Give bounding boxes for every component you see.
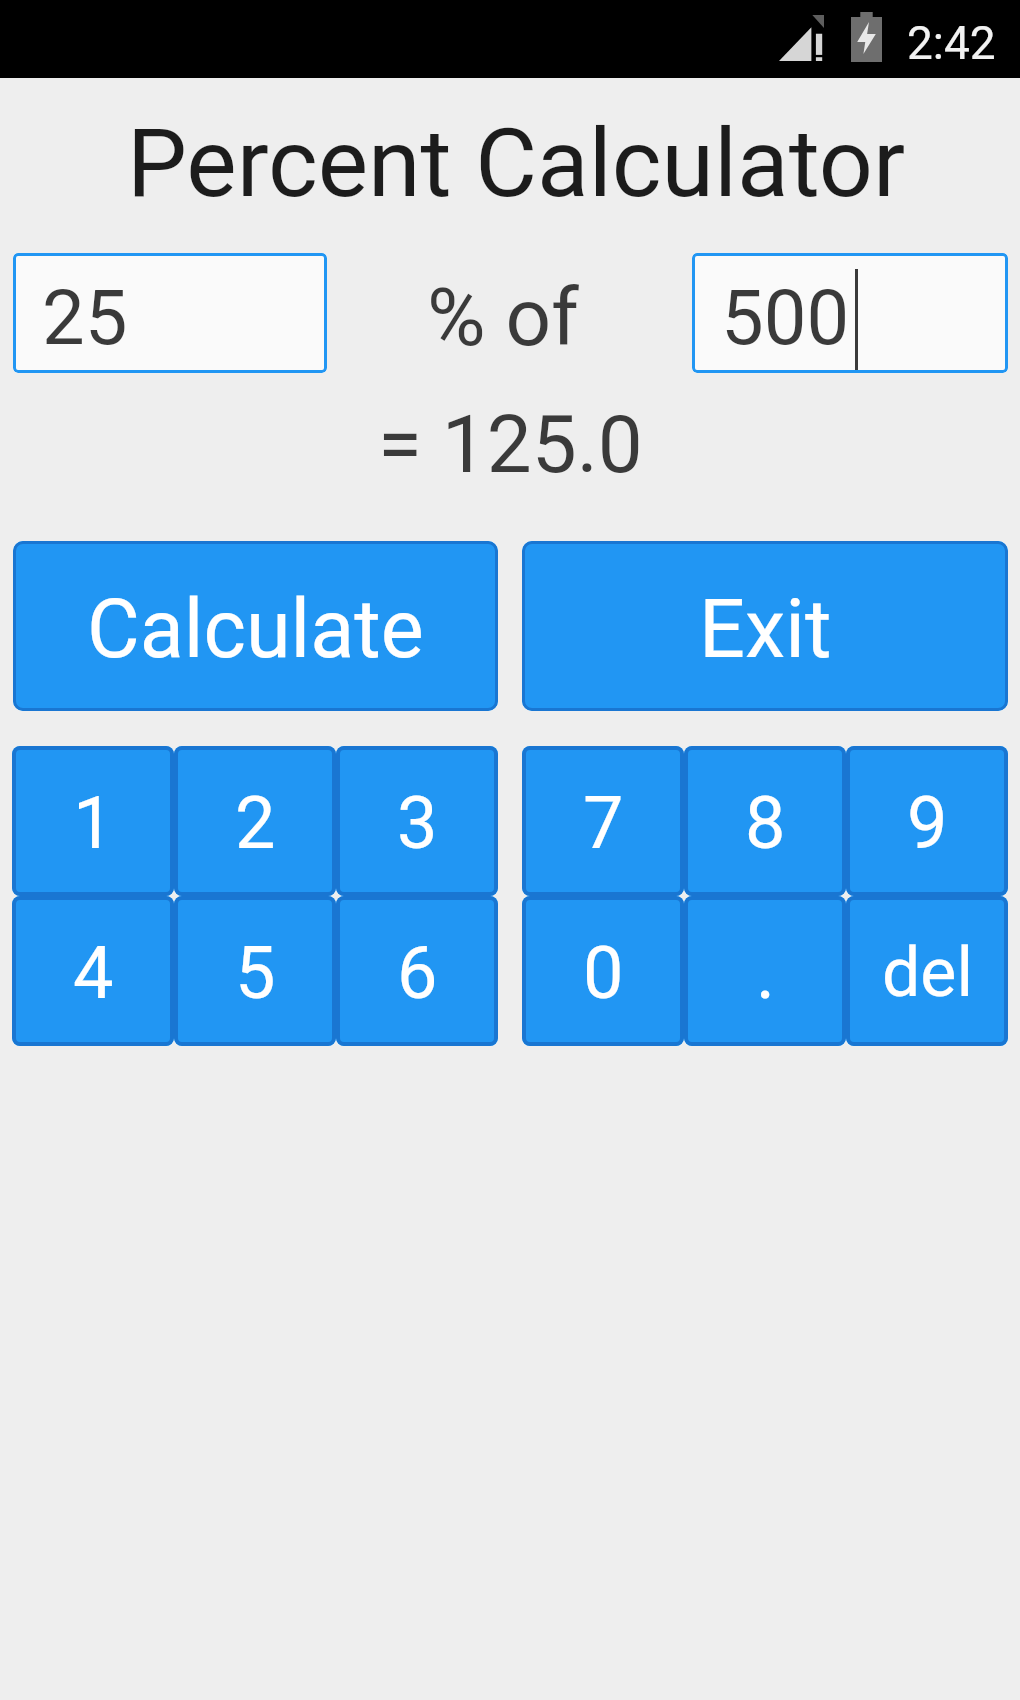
staticText: = 125.0 xyxy=(378,398,643,492)
staticText: 4 xyxy=(73,931,114,1015)
button[interactable]: 7 xyxy=(522,746,684,896)
staticText: 5 xyxy=(235,931,276,1015)
staticText: del xyxy=(882,933,973,1013)
button[interactable]: 500 xyxy=(692,253,1008,373)
staticText: 3 xyxy=(397,781,438,865)
staticText: 7 xyxy=(583,781,624,865)
button[interactable]: 5 xyxy=(174,896,336,1046)
staticText: 1 xyxy=(73,781,114,865)
button[interactable]: del xyxy=(846,896,1008,1046)
button[interactable]: Exit xyxy=(522,541,1008,711)
button[interactable]: . xyxy=(684,896,846,1046)
button[interactable]: 8 xyxy=(684,746,846,896)
button[interactable]: 1 xyxy=(12,746,174,896)
button[interactable]: 2 xyxy=(174,746,336,896)
staticText: Exit xyxy=(699,582,832,677)
staticText: Calculate xyxy=(87,582,424,677)
button[interactable]: 25 xyxy=(13,253,327,373)
staticText: . xyxy=(756,931,775,1015)
staticText: 2:42 xyxy=(907,16,996,68)
button[interactable]: Calculate xyxy=(13,541,498,711)
button[interactable]: 6 xyxy=(336,896,498,1046)
staticText: 9 xyxy=(907,781,948,865)
staticText: 2 xyxy=(235,781,276,865)
staticText: Percent Calculator xyxy=(127,108,906,219)
button[interactable]: 3 xyxy=(336,746,498,896)
staticText: % of xyxy=(427,271,579,365)
button[interactable]: 9 xyxy=(846,746,1008,896)
staticText: 8 xyxy=(745,781,786,865)
staticText: 25 xyxy=(42,273,128,362)
button[interactable]: 4 xyxy=(12,896,174,1046)
button[interactable]: 0 xyxy=(522,896,684,1046)
staticText: 500 xyxy=(721,273,850,362)
staticText: 0 xyxy=(583,931,624,1015)
staticText: 6 xyxy=(397,931,438,1015)
